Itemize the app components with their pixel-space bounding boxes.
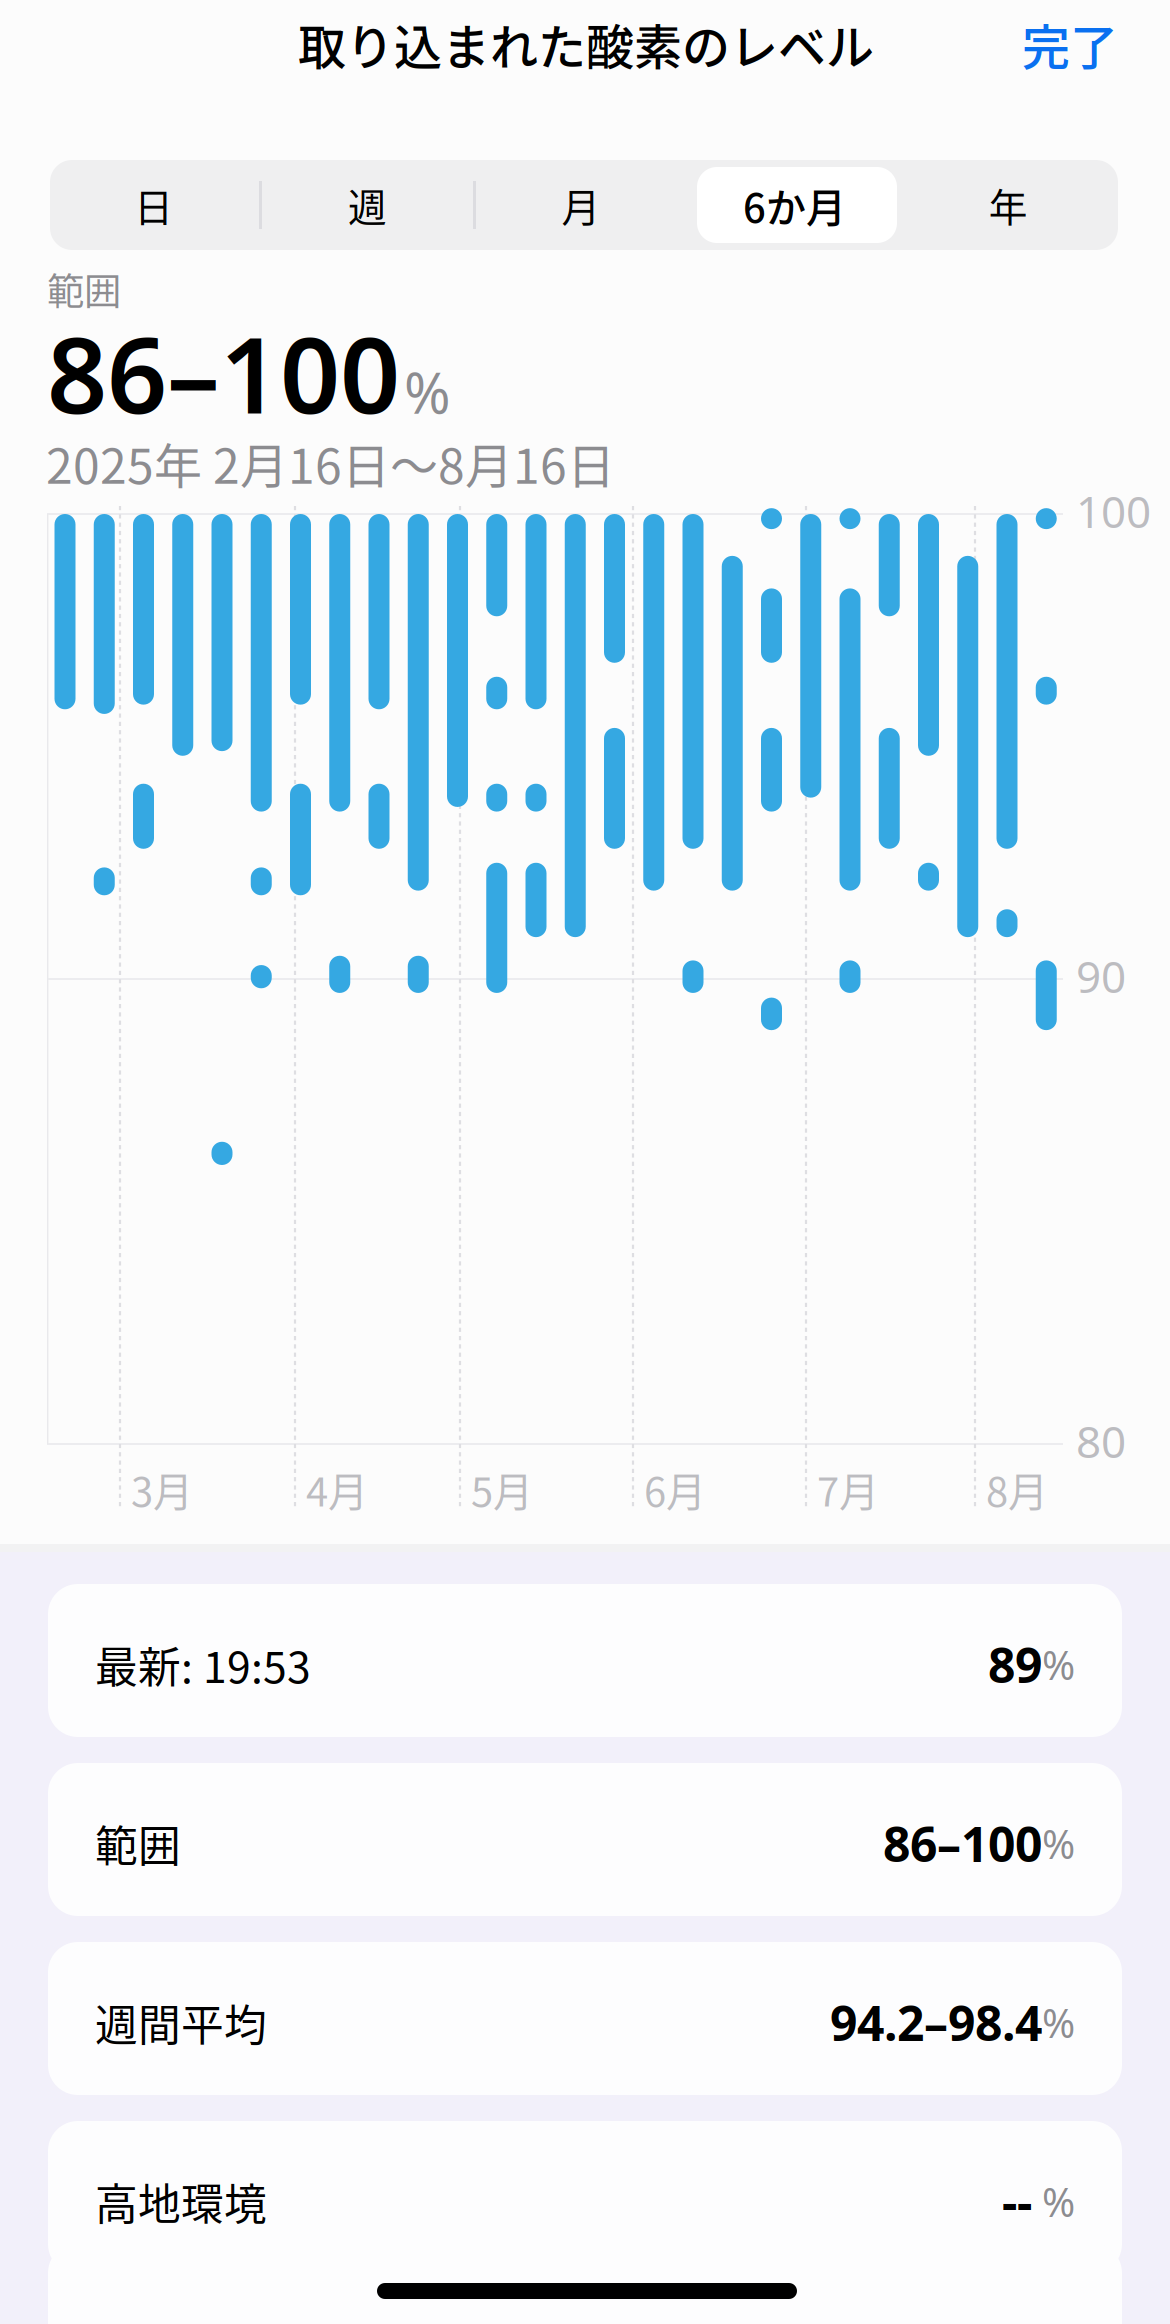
staticText: 6か月 xyxy=(743,176,846,234)
staticText: 完了 xyxy=(1022,9,1118,79)
button[interactable]: 最新: 19:53 xyxy=(48,1584,1122,1737)
staticText: 月 xyxy=(561,177,600,233)
button[interactable]: 週 xyxy=(261,160,474,250)
staticText: -- xyxy=(1002,2169,1032,2234)
staticText: 範囲 xyxy=(47,262,121,316)
staticText: 8月 xyxy=(986,1460,1048,1518)
staticText: 86–100 xyxy=(47,301,400,444)
button[interactable]: 高地環境 xyxy=(48,2121,1122,2274)
button[interactable]: 月 xyxy=(474,160,688,250)
staticText: 2025年 2月16日〜8月16日 xyxy=(46,428,615,497)
staticText: 100 xyxy=(1076,481,1151,541)
button[interactable]: 6か月 xyxy=(688,160,901,250)
staticText: 取り込まれた酸素のレベル xyxy=(298,9,874,78)
staticText: 80 xyxy=(1076,1411,1126,1471)
staticText: 4月 xyxy=(306,1460,368,1518)
button[interactable]: 完了 xyxy=(1022,16,1118,72)
staticText: 3月 xyxy=(131,1460,193,1518)
staticText: 6月 xyxy=(644,1460,706,1518)
button[interactable]: 年 xyxy=(901,160,1115,250)
button[interactable]: 日 xyxy=(47,160,261,250)
staticText: 86–100 xyxy=(883,1811,1042,1876)
staticText: % xyxy=(1042,1637,1075,1692)
staticText: % xyxy=(1032,2174,1075,2229)
staticText: 週間平均 xyxy=(95,1992,267,2053)
staticText: 最新: 19:53 xyxy=(95,1634,311,1695)
button[interactable]: 週間平均 xyxy=(48,1942,1122,2095)
staticText: % xyxy=(1042,1995,1075,2050)
staticText: 週 xyxy=(348,177,387,233)
staticText: 日 xyxy=(134,177,173,233)
staticText: 7月 xyxy=(817,1460,879,1518)
staticText: 90 xyxy=(1076,946,1126,1006)
staticText: 94.2–98.4 xyxy=(830,1990,1042,2055)
button[interactable]: 範囲 xyxy=(48,1763,1122,1916)
staticText: 範囲 xyxy=(95,1813,181,1874)
staticText: 89 xyxy=(988,1632,1042,1697)
staticText: % xyxy=(1042,1816,1075,1871)
staticText: % xyxy=(404,354,451,430)
staticText: 年 xyxy=(989,177,1028,233)
staticText: 高地環境 xyxy=(95,2171,267,2232)
staticText: 5月 xyxy=(471,1460,533,1518)
